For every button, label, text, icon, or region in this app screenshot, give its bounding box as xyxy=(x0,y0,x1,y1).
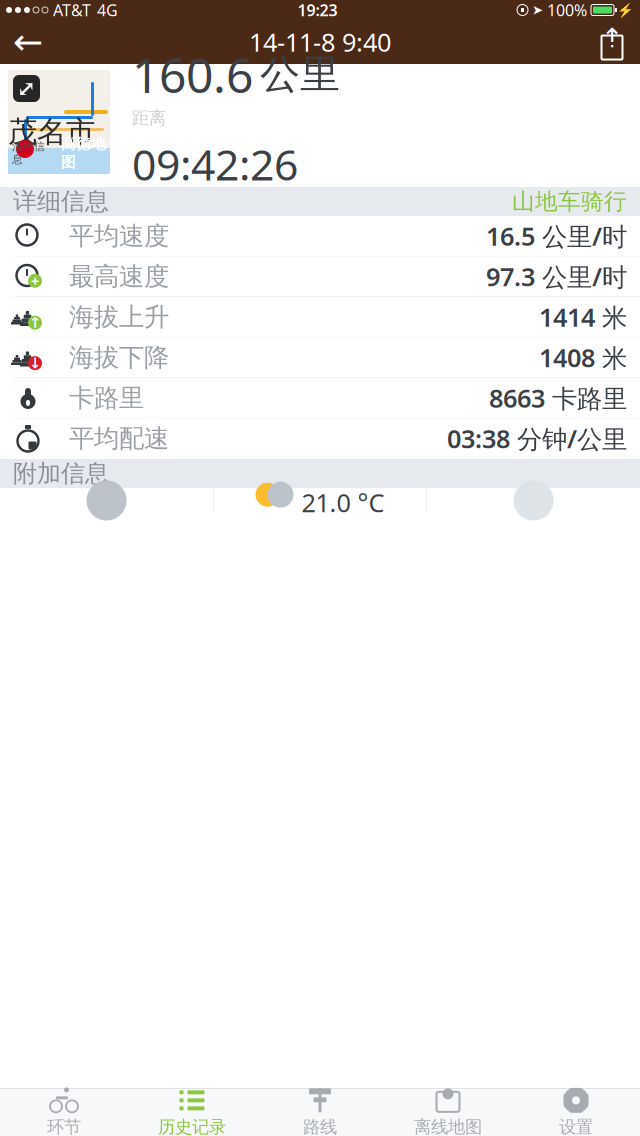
button[interactable]: 离线地图 xyxy=(384,1089,512,1136)
staticText: 茂名市 xyxy=(8,114,95,150)
staticText: 09:42:26 xyxy=(132,135,298,192)
staticText: 最高速度 xyxy=(69,261,169,292)
button[interactable]: ↓ xyxy=(0,337,640,378)
staticText: + xyxy=(31,271,39,290)
button[interactable]: 设置 xyxy=(512,1089,640,1136)
staticText: ⤢ xyxy=(17,75,36,101)
staticText: 160.6 xyxy=(132,42,253,106)
button[interactable]: 平均配速 xyxy=(0,418,640,459)
staticText: 14-11-8 9:40 xyxy=(249,25,391,59)
button[interactable]: + xyxy=(0,256,640,297)
staticText: 卡路里 xyxy=(69,382,144,413)
button[interactable]: 环节 xyxy=(0,1089,128,1136)
staticText: AT&T xyxy=(53,0,91,21)
staticText: 环节 xyxy=(47,1116,81,1136)
staticText: 法律信息 xyxy=(12,140,45,166)
staticText: 距离 xyxy=(132,107,166,129)
button[interactable]: 卡路里 xyxy=(0,378,640,418)
staticText: 海拔上升 xyxy=(69,301,169,332)
staticText: ➤ xyxy=(532,2,543,17)
staticText: 附加信息 xyxy=(13,459,109,488)
staticText: ↑ xyxy=(29,314,41,331)
staticText: 平均速度 xyxy=(69,220,169,251)
staticText: 19:23 xyxy=(297,0,337,21)
staticText: 海拔下降 xyxy=(69,342,169,373)
staticText: 设置 xyxy=(559,1116,593,1136)
staticText: 03:38 分钟/公里 xyxy=(447,422,627,455)
staticText: ↓ xyxy=(29,355,41,371)
staticText: ← xyxy=(13,22,43,62)
staticText: 山地车骑行 xyxy=(512,188,627,215)
staticText: 4G xyxy=(97,0,118,21)
staticText: 8663 卡路里 xyxy=(489,381,627,415)
staticText: 16.5 公里/时 xyxy=(486,219,627,253)
staticText: 1414 米 xyxy=(539,300,627,334)
staticText: 平均配速 xyxy=(69,423,169,454)
button[interactable]: 平均速度 xyxy=(0,216,640,256)
button[interactable]: 路线 xyxy=(256,1089,384,1136)
staticText: 97.3 公里/时 xyxy=(486,260,627,293)
staticText: 21.0 °C xyxy=(301,486,384,519)
button[interactable]: Expand map xyxy=(8,70,110,174)
staticText: 100% xyxy=(547,0,587,21)
staticText: 历史记录 xyxy=(158,1116,226,1136)
button[interactable]: Back xyxy=(0,20,56,64)
staticText: ⚡ xyxy=(617,2,634,18)
staticText: 路线 xyxy=(303,1116,337,1136)
staticText: ↑ xyxy=(601,23,623,53)
button[interactable]: Share xyxy=(584,20,640,64)
button[interactable]: ↑ xyxy=(0,297,640,337)
staticText: 高德地图 xyxy=(61,135,106,171)
staticText: 1408 米 xyxy=(539,341,627,374)
staticText: 离线地图 xyxy=(414,1116,482,1136)
staticText: 详细信息 xyxy=(13,187,109,216)
button[interactable]: 历史记录 xyxy=(128,1089,256,1136)
staticText: 公里 xyxy=(260,50,340,99)
